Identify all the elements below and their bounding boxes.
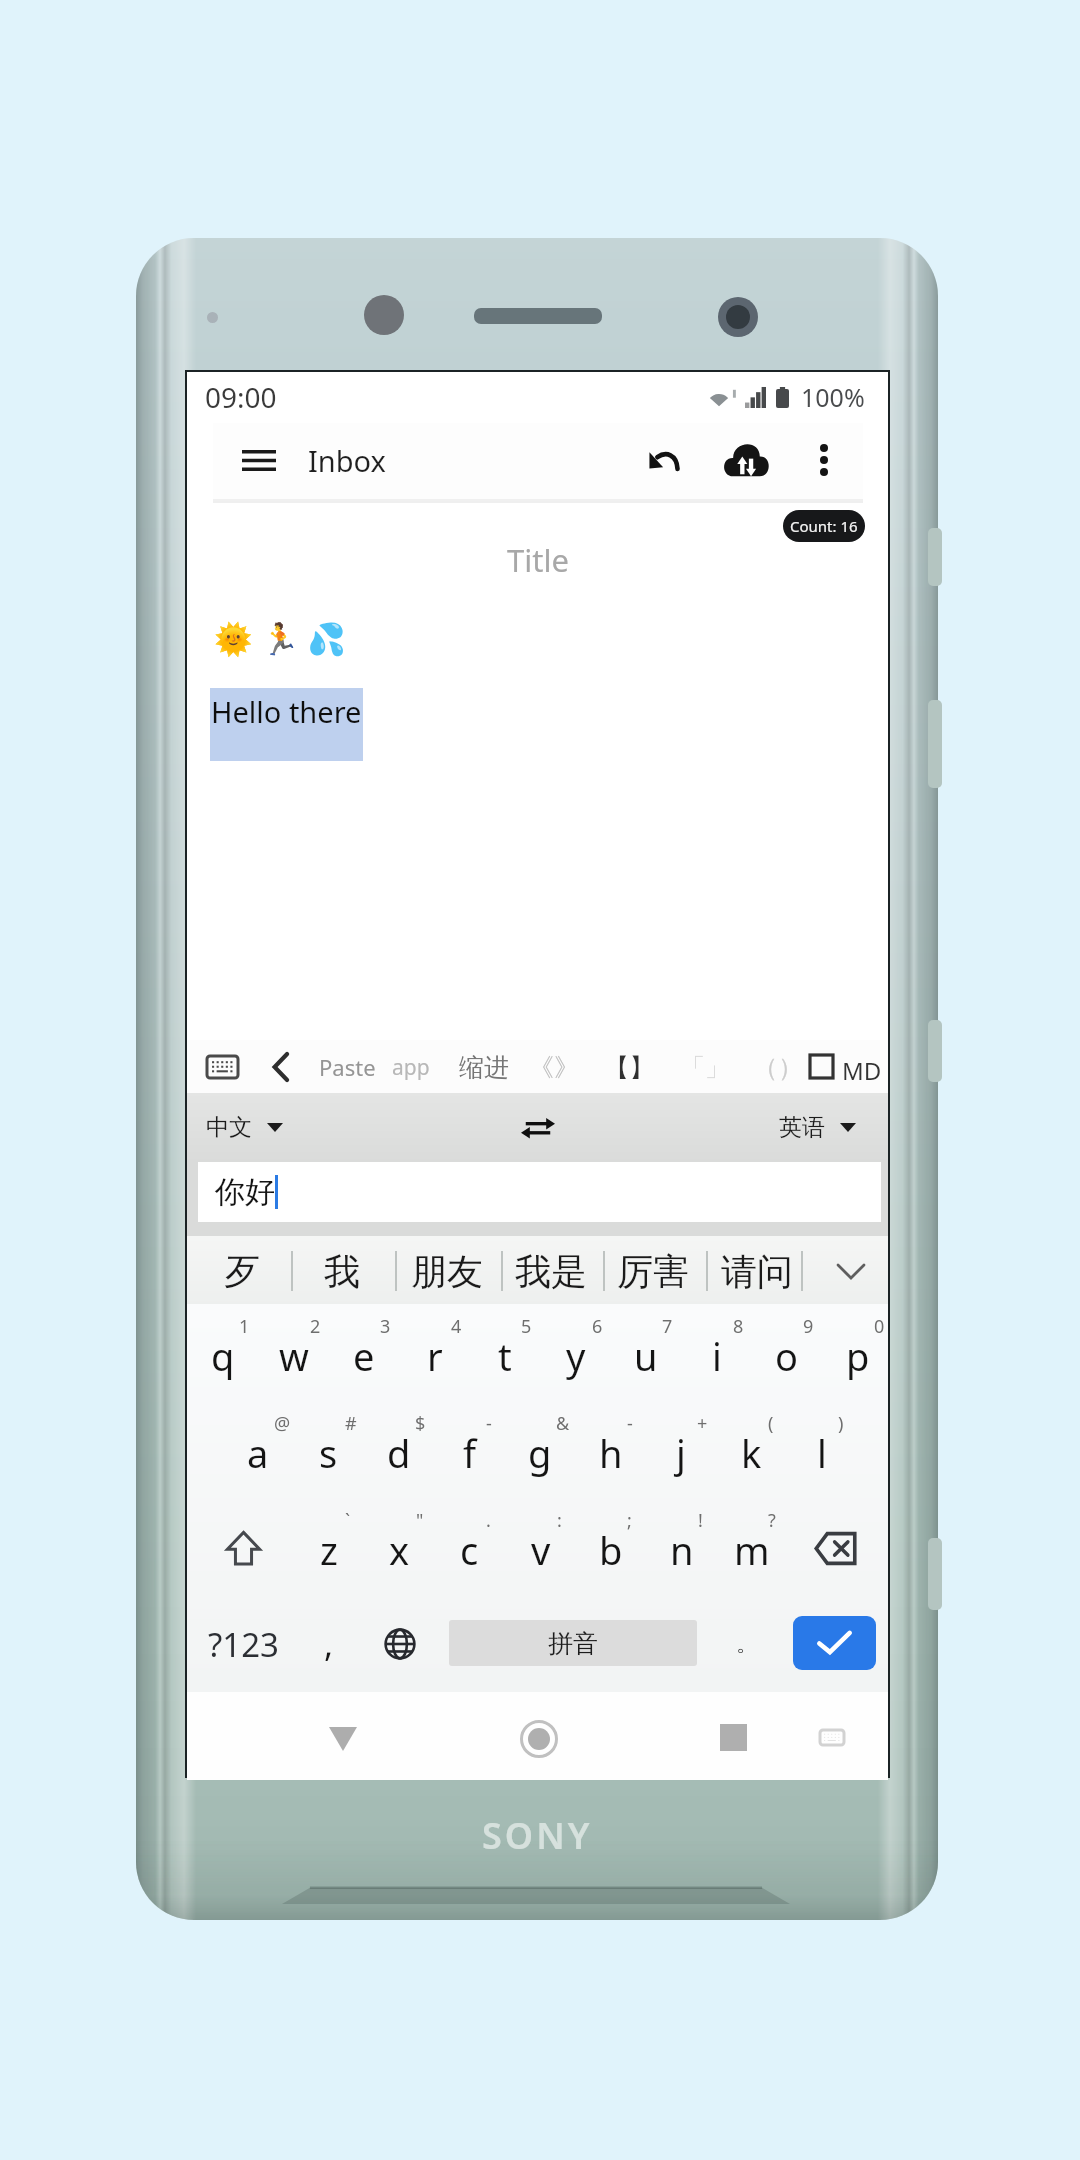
button[interactable]: Show more candidates xyxy=(827,1249,875,1293)
staticText: c xyxy=(460,1524,479,1576)
button[interactable]: Shift xyxy=(197,1500,289,1597)
staticText: e xyxy=(353,1330,375,1382)
staticText: @ xyxy=(274,1411,291,1436)
button[interactable]: Open navigation menu xyxy=(227,440,291,480)
button[interactable]: 《》 xyxy=(527,1046,581,1088)
staticText: 8 xyxy=(733,1314,744,1339)
button[interactable]: Back xyxy=(309,1710,377,1768)
button[interactable]: Swap languages xyxy=(511,1106,565,1150)
button[interactable]: 2 xyxy=(258,1304,329,1401)
button[interactable]: 1 xyxy=(187,1304,258,1401)
button[interactable]: 我 xyxy=(300,1236,384,1306)
button[interactable]: 9 xyxy=(751,1304,822,1401)
button[interactable]: # xyxy=(293,1401,364,1498)
button[interactable]: 4 xyxy=(399,1304,470,1401)
staticText: z xyxy=(320,1524,338,1576)
button[interactable]: 中文 xyxy=(202,1093,287,1162)
staticText: 2 xyxy=(310,1314,321,1339)
button[interactable]: 7 xyxy=(610,1304,681,1401)
staticText: v xyxy=(531,1524,551,1576)
staticText: Title xyxy=(507,539,569,581)
staticText: SONY xyxy=(482,1811,593,1851)
button[interactable]: - xyxy=(575,1401,646,1498)
button[interactable]: ) xyxy=(786,1401,857,1498)
button[interactable]: ? xyxy=(716,1498,787,1595)
staticText: q xyxy=(211,1330,235,1382)
button[interactable]: 厉害 xyxy=(607,1236,699,1306)
button[interactable]: $ xyxy=(363,1401,434,1498)
button[interactable]: Confirm xyxy=(793,1616,876,1670)
staticText: 7 xyxy=(662,1314,673,1339)
button[interactable]: 英语 xyxy=(775,1093,860,1162)
button[interactable]: & xyxy=(504,1401,575,1498)
button[interactable]: 【】 xyxy=(602,1046,656,1088)
staticText: $ xyxy=(415,1411,426,1436)
staticText: 英语 xyxy=(779,1113,825,1142)
staticText: f xyxy=(463,1427,477,1479)
staticText: - xyxy=(627,1411,633,1436)
button[interactable]: Paste xyxy=(317,1046,378,1088)
button[interactable]: 「」 xyxy=(678,1046,732,1088)
staticText: ! xyxy=(698,1508,703,1533)
staticText: " xyxy=(416,1508,424,1533)
button[interactable]: ; xyxy=(575,1498,646,1595)
button[interactable]: Toggle markdown xyxy=(810,1055,833,1078)
button[interactable]: 。 xyxy=(715,1596,779,1692)
button[interactable]: app xyxy=(390,1046,432,1088)
button[interactable]: 3 xyxy=(328,1304,399,1401)
button[interactable]: ! xyxy=(646,1498,717,1595)
staticText: ? xyxy=(768,1508,776,1533)
button[interactable]: , xyxy=(295,1596,363,1692)
button[interactable]: Sync xyxy=(718,437,774,483)
button[interactable]: 8 xyxy=(681,1304,752,1401)
button[interactable]: . xyxy=(434,1498,505,1595)
button[interactable]: " xyxy=(364,1498,435,1595)
button[interactable]: 我是 xyxy=(505,1236,597,1306)
staticText: 0 xyxy=(874,1314,885,1339)
button[interactable]: Undo xyxy=(641,437,691,483)
staticText: h xyxy=(599,1427,623,1479)
button[interactable]: - xyxy=(434,1401,505,1498)
staticText: o xyxy=(775,1330,798,1382)
button[interactable]: 6 xyxy=(540,1304,611,1401)
button[interactable]: Back xyxy=(263,1048,299,1086)
staticText: Inbox xyxy=(308,441,386,480)
button[interactable]: 0 xyxy=(822,1304,893,1401)
button[interactable]: 拼音 xyxy=(449,1620,697,1666)
button[interactable]: Change keyboard language xyxy=(367,1596,433,1692)
button[interactable]: ` xyxy=(293,1498,364,1595)
button[interactable]: Count: 16 xyxy=(783,510,865,542)
button[interactable]: ?123 xyxy=(195,1596,291,1692)
button[interactable]: ( xyxy=(716,1401,787,1498)
button[interactable]: Backspace xyxy=(789,1500,881,1597)
button[interactable]: Keyboard xyxy=(201,1050,243,1084)
staticText: 【】 xyxy=(604,1052,654,1083)
staticText: + xyxy=(697,1411,708,1436)
button[interactable]: Recent apps xyxy=(701,1709,765,1765)
button[interactable]: 歹 xyxy=(200,1236,284,1306)
staticText: . xyxy=(486,1508,491,1533)
button[interactable]: 朋友 xyxy=(400,1236,494,1306)
staticText: 中文 xyxy=(206,1113,252,1142)
button[interactable]: Inbox xyxy=(308,437,386,483)
staticText: （） xyxy=(753,1052,803,1083)
button[interactable]: 缩进 xyxy=(457,1046,511,1088)
button[interactable]: More options xyxy=(802,437,846,483)
staticText: r xyxy=(427,1330,443,1382)
button[interactable]: 请问 xyxy=(711,1236,803,1306)
staticText: , xyxy=(324,1621,334,1667)
staticText: w xyxy=(279,1330,309,1382)
button[interactable]: @ xyxy=(222,1401,293,1498)
button[interactable]: 5 xyxy=(469,1304,540,1401)
button[interactable]: （） xyxy=(751,1046,805,1088)
staticText: 厉害 xyxy=(617,1249,689,1294)
button[interactable]: : xyxy=(505,1498,576,1595)
staticText: u xyxy=(634,1330,658,1382)
button[interactable]: Hide keyboard xyxy=(808,1714,856,1760)
button[interactable]: Home xyxy=(505,1709,573,1769)
staticText: ) xyxy=(838,1411,844,1436)
staticText: : xyxy=(557,1508,562,1533)
staticText: 🌞 🏃 💦 xyxy=(214,617,346,659)
staticText: k xyxy=(741,1427,762,1479)
button[interactable]: + xyxy=(645,1401,716,1498)
